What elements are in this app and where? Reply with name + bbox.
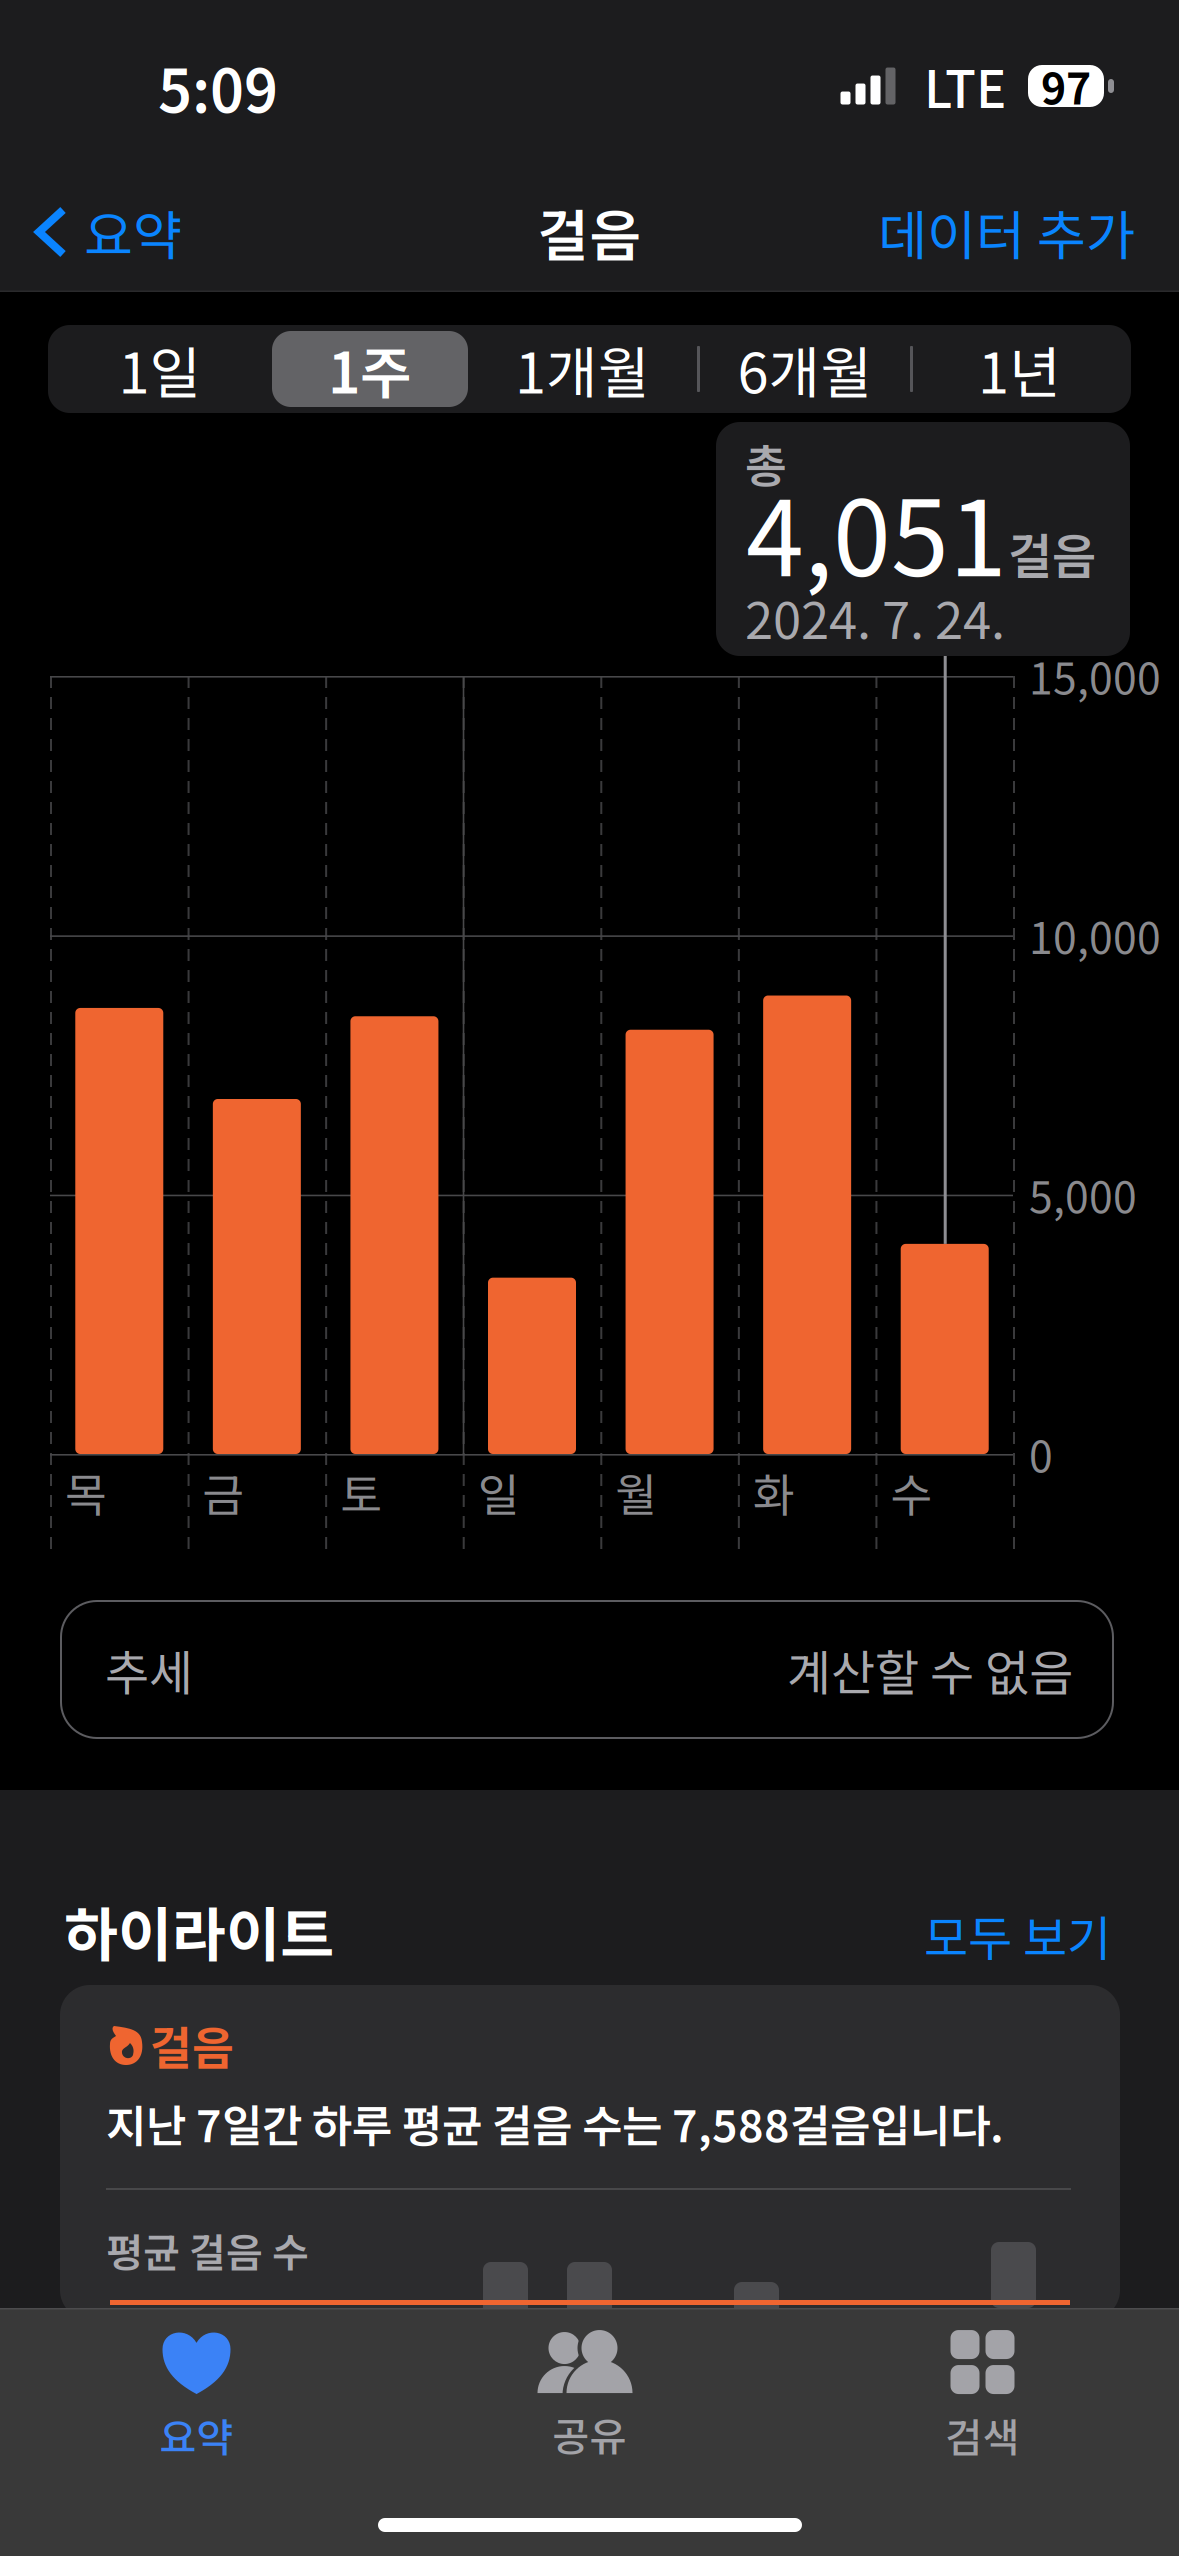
staticText: 검색 [945, 2406, 1019, 2464]
button[interactable]: 걸음 [60, 1985, 1120, 2320]
staticText: 지난 7일간 하루 평균 걸음 수는 7,588걸음입니다. [106, 2091, 1004, 2155]
staticText: 5:09 [158, 44, 278, 129]
staticText: 1개월 [515, 328, 650, 410]
staticText: 6개월 [737, 328, 872, 410]
staticText: 걸음 [150, 2012, 234, 2078]
staticText: 목 [65, 1459, 107, 1525]
button[interactable]: 6개월 [700, 331, 910, 407]
staticText: 토 [340, 1459, 382, 1525]
staticText: 수 [890, 1459, 932, 1525]
staticText: 1일 [118, 328, 201, 410]
button[interactable]: 요약 [0, 2322, 393, 2472]
staticText: 0 [1029, 1423, 1053, 1485]
staticText: LTE [924, 49, 1006, 123]
staticText: 월 [615, 1459, 657, 1525]
button[interactable]: 공유 [393, 2322, 786, 2472]
staticText: 평균 걸음 수 [106, 2221, 309, 2279]
button[interactable]: 추세 [61, 1601, 1113, 1738]
staticText: 추세 [105, 1635, 193, 1704]
staticText: 일 [478, 1459, 520, 1525]
staticText: 1주 [328, 328, 412, 410]
button[interactable]: 1일 [48, 331, 272, 407]
button[interactable]: 1년 [913, 331, 1126, 407]
staticText: 4,051 [746, 456, 1007, 606]
staticText: 모두 보기 [924, 1900, 1111, 1970]
staticText: 2024. 7. 24. [745, 580, 1005, 654]
staticText: 97 [1041, 55, 1091, 117]
staticText: 데이터 추가 [878, 193, 1135, 271]
staticText: 화 [753, 1459, 795, 1525]
staticText: 15,000 [1029, 645, 1161, 707]
staticText: 총 [745, 430, 787, 496]
button[interactable]: 1주 [272, 331, 468, 407]
staticText: 하이라이트 [64, 1888, 334, 1973]
staticText: 10,000 [1029, 904, 1161, 966]
button[interactable]: 1개월 [468, 331, 697, 407]
staticText: 계산할 수 없음 [787, 1635, 1073, 1704]
staticText: 요약 [84, 193, 182, 271]
staticText: 걸음 [537, 191, 641, 273]
staticText: 1년 [978, 328, 1061, 410]
button[interactable]: 요약 [0, 172, 206, 292]
button[interactable]: 검색 [786, 2322, 1179, 2472]
staticText: 걸음 [1008, 518, 1096, 588]
staticText: 요약 [159, 2406, 233, 2464]
button[interactable]: 모두 보기 [851, 1900, 1111, 1970]
staticText: 5,000 [1029, 1164, 1137, 1226]
staticText: 공유 [552, 2405, 626, 2463]
staticText: 금 [203, 1459, 245, 1525]
button[interactable]: 데이터 추가 [878, 172, 1179, 292]
